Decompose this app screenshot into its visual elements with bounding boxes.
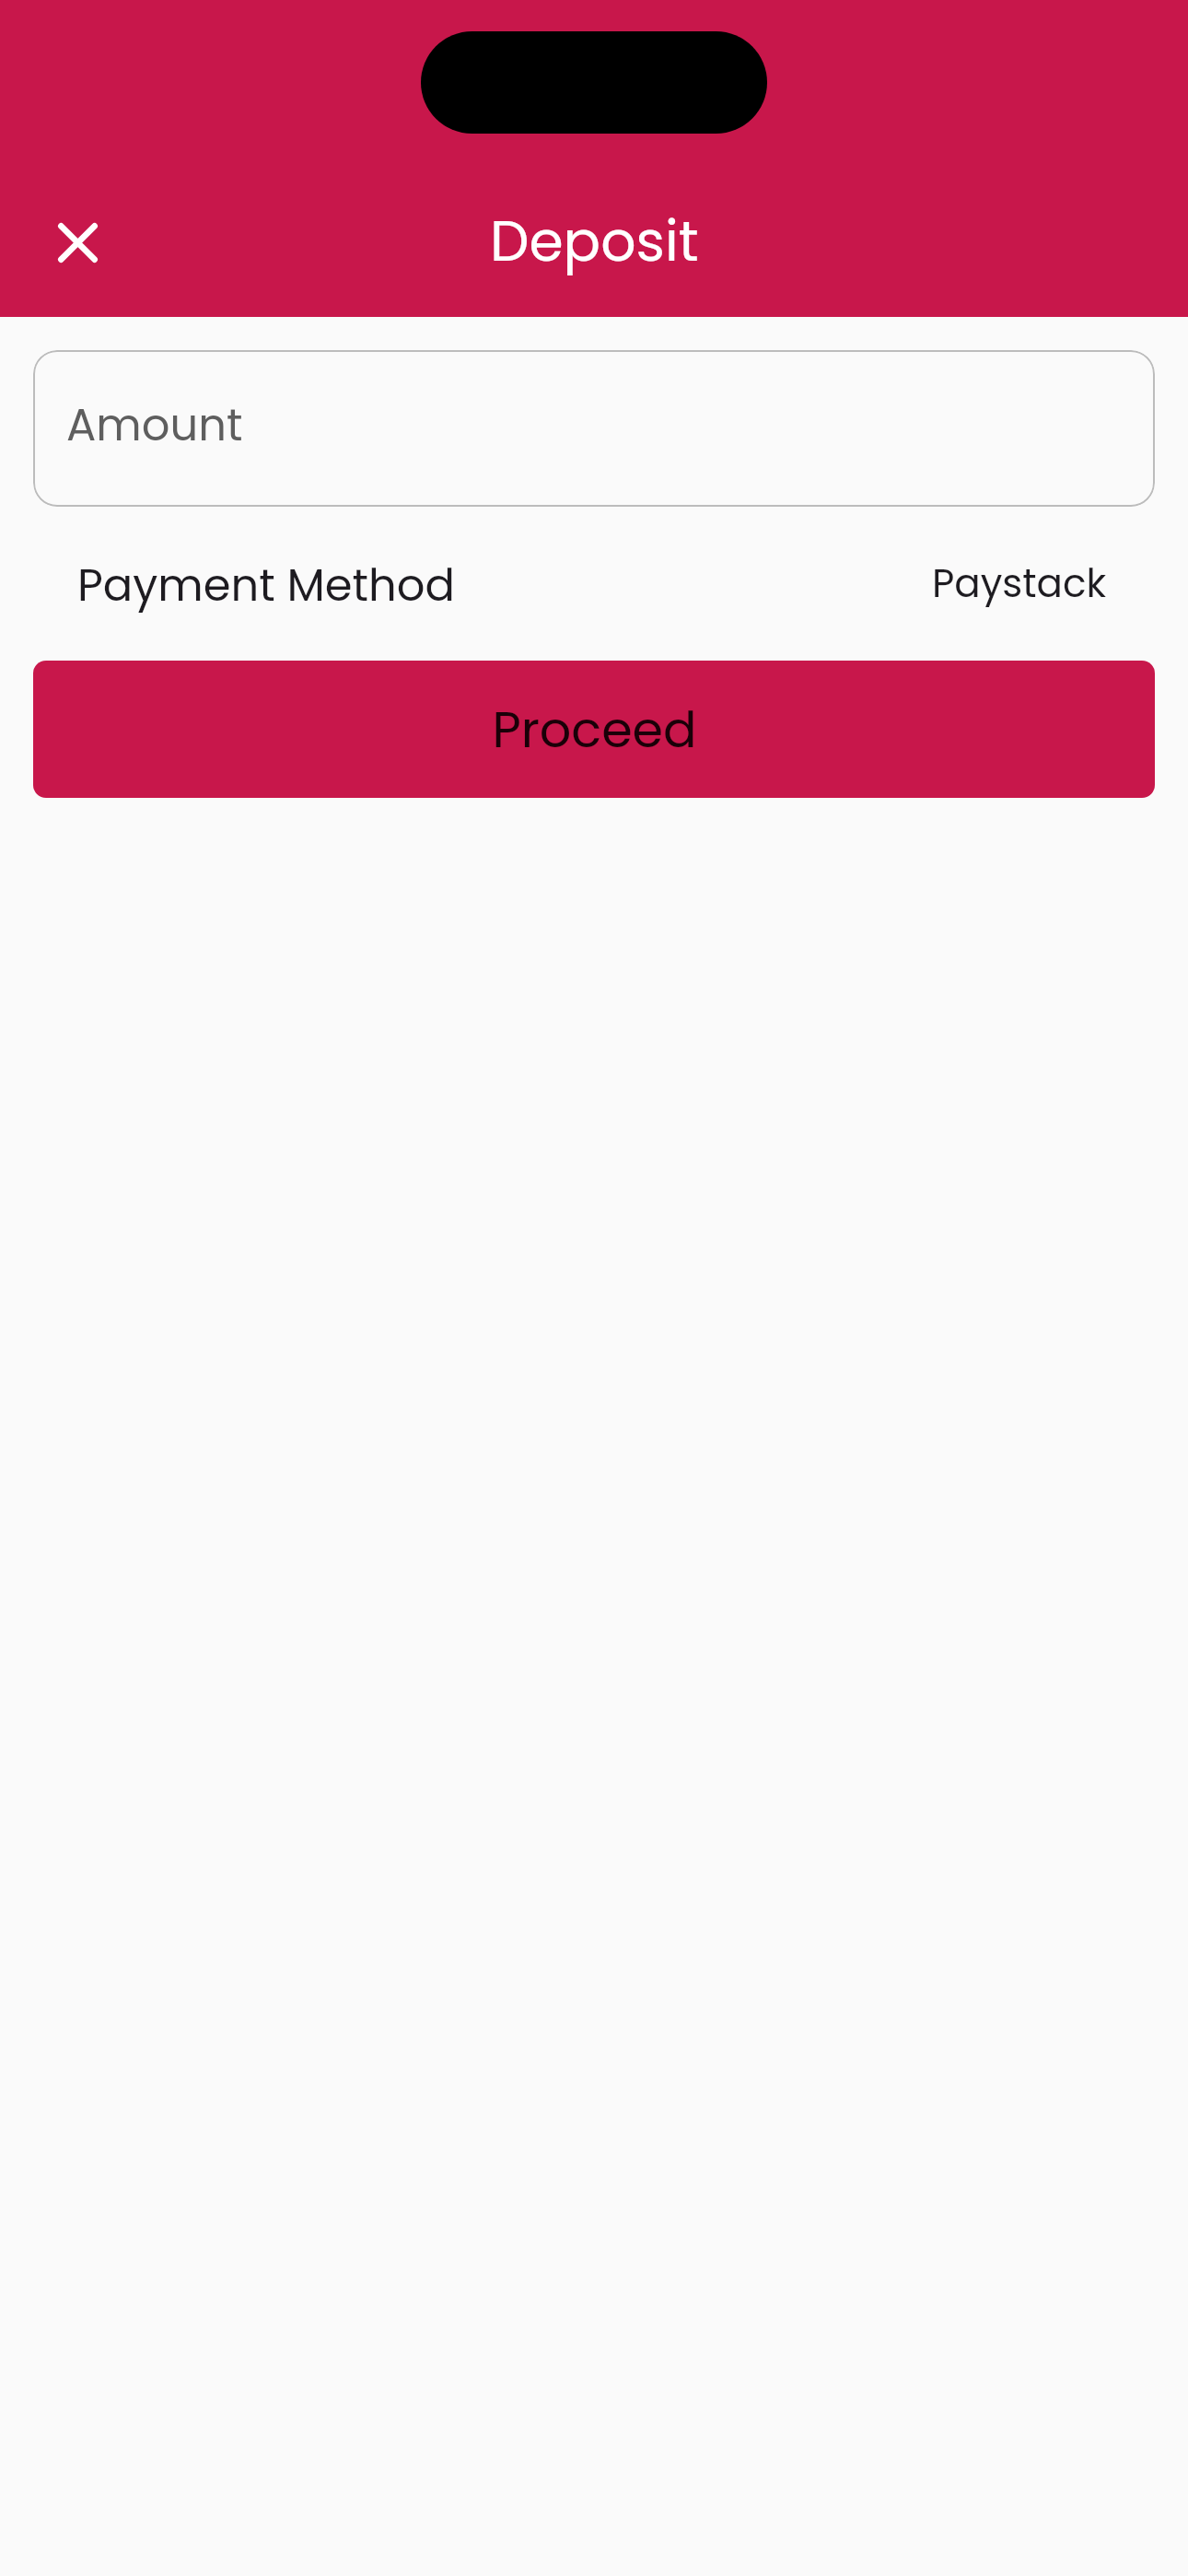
staticText: Payment Method xyxy=(77,555,455,616)
staticText: Amount xyxy=(66,394,243,456)
staticText: Proceed xyxy=(492,695,697,765)
staticText: Deposit xyxy=(490,203,699,280)
button[interactable]: Payment Method xyxy=(0,507,1188,661)
button[interactable]: Proceed xyxy=(33,661,1155,798)
button[interactable]: Amount xyxy=(33,350,1155,507)
staticText: Paystack xyxy=(932,556,1107,611)
button[interactable]: Close xyxy=(18,183,136,301)
